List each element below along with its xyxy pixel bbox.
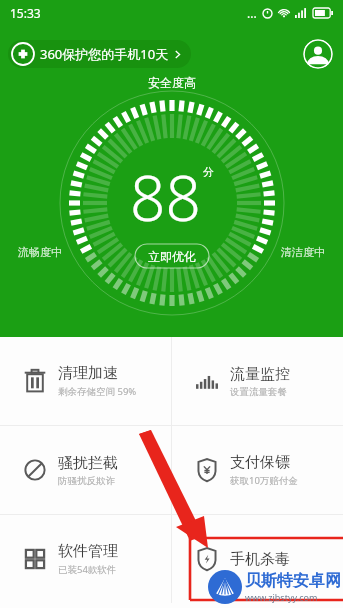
staticText: 360保护您的手机10天 <box>40 45 169 63</box>
staticText: 防骚扰反欺诈 <box>58 475 115 487</box>
staticText: 已装54款软件 <box>58 563 117 576</box>
button[interactable]: 软件管理 <box>0 515 171 603</box>
staticText: 安全度高 <box>148 75 196 90</box>
button[interactable]: 骚扰拦截 <box>0 426 171 514</box>
staticText: 软件管理 <box>58 542 118 561</box>
staticText: 清理加速 <box>58 364 118 383</box>
button[interactable]: Account <box>303 39 333 69</box>
button[interactable]: 360保护您的手机10天 <box>8 40 191 68</box>
staticText: 支付保镖 <box>230 453 290 472</box>
staticText: 贝斯特安卓网 <box>245 571 341 591</box>
button[interactable]: 立即优化 <box>134 243 210 269</box>
staticText: 剩余存储空间 59% <box>58 385 137 398</box>
staticText: 分 <box>203 165 214 179</box>
staticText: 流畅度中 <box>18 245 62 259</box>
staticText: 立即优化 <box>148 249 196 264</box>
staticText: 88 <box>130 155 201 239</box>
staticText: www.zjbstyy.com <box>245 591 318 603</box>
button[interactable]: 清理加速 <box>0 337 171 425</box>
staticText: 骚扰拦截 <box>58 454 118 473</box>
button[interactable]: 手机杀毒 <box>172 515 343 603</box>
staticText: 15:33 <box>10 5 41 21</box>
staticText: 设置流量套餐 <box>230 386 287 398</box>
staticText: 流量监控 <box>230 365 290 384</box>
button[interactable]: 支付保镖 <box>172 426 343 514</box>
staticText: 获取10万赔付金 <box>230 474 298 487</box>
staticText: 手机杀毒 <box>230 550 290 569</box>
staticText: 清洁度中 <box>281 245 325 259</box>
staticText: ... <box>247 5 257 21</box>
button[interactable]: 流量监控 <box>172 337 343 425</box>
